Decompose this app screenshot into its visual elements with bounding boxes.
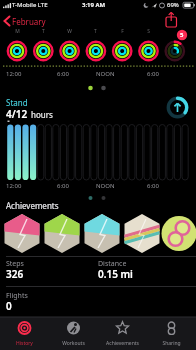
staticText: M xyxy=(15,28,20,35)
button[interactable] xyxy=(84,214,122,254)
staticText: S xyxy=(147,28,150,35)
staticText: History xyxy=(16,340,33,347)
button[interactable]: Achievements xyxy=(98,317,147,350)
staticText: 69% xyxy=(167,1,179,9)
button[interactable] xyxy=(4,214,42,254)
button[interactable]: Sharing xyxy=(147,317,196,350)
staticText: F xyxy=(121,28,124,35)
staticText: 6:00 xyxy=(147,70,159,78)
button[interactable] xyxy=(164,94,192,122)
staticText: W xyxy=(67,28,72,35)
staticText: 0.15 mi xyxy=(98,267,133,281)
staticText: Distance xyxy=(98,259,127,269)
staticText: 0 xyxy=(6,299,12,313)
button[interactable] xyxy=(44,214,82,254)
staticText: Flights xyxy=(6,291,28,301)
staticText: T xyxy=(94,28,97,35)
button[interactable] xyxy=(124,214,162,254)
staticText: NOON xyxy=(96,70,115,78)
staticText: Sharing xyxy=(162,340,181,347)
staticText: 6:00 xyxy=(57,70,69,78)
staticText: T xyxy=(42,28,45,35)
button[interactable] xyxy=(164,214,196,254)
staticText: Achievements xyxy=(106,340,139,347)
staticText: Workouts xyxy=(62,340,85,347)
staticText: 3:19 AM xyxy=(82,1,106,9)
staticText: 12:00 xyxy=(6,182,22,190)
staticText: T-Mobile LTE xyxy=(12,1,48,9)
button[interactable] xyxy=(160,10,184,30)
staticText: NOON xyxy=(96,182,115,190)
staticText: 326 xyxy=(6,267,24,281)
staticText: 6:00 xyxy=(57,182,69,190)
staticText: February xyxy=(12,16,46,27)
staticText: hours xyxy=(31,109,53,120)
button[interactable]: Workouts xyxy=(49,317,98,350)
button[interactable]: History xyxy=(0,317,49,350)
staticText: Achievements xyxy=(6,200,59,211)
staticText: Steps xyxy=(6,259,24,269)
staticText: 12:00 xyxy=(6,70,22,78)
staticText: 6:00 xyxy=(147,182,159,190)
staticText: Stand xyxy=(6,97,28,108)
button[interactable]: February xyxy=(0,12,62,29)
staticText: 5 xyxy=(180,31,184,39)
staticText: 4/12 xyxy=(6,107,28,121)
